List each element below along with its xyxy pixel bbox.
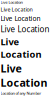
staticText: Live Location [0,14,40,23]
staticText: Live Location [0,24,49,34]
staticText: Live Location [0,35,41,60]
staticText: Location of any Number [0,91,41,96]
staticText: Live Location [0,61,47,90]
staticText: Live Location [0,6,32,13]
staticText: Live Location [0,0,22,5]
